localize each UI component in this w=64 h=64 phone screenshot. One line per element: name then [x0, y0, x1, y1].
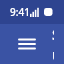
button[interactable]: Menu [10, 27, 44, 61]
staticText: Sunset [52, 24, 54, 64]
staticText: 9:41 [10, 5, 30, 19]
